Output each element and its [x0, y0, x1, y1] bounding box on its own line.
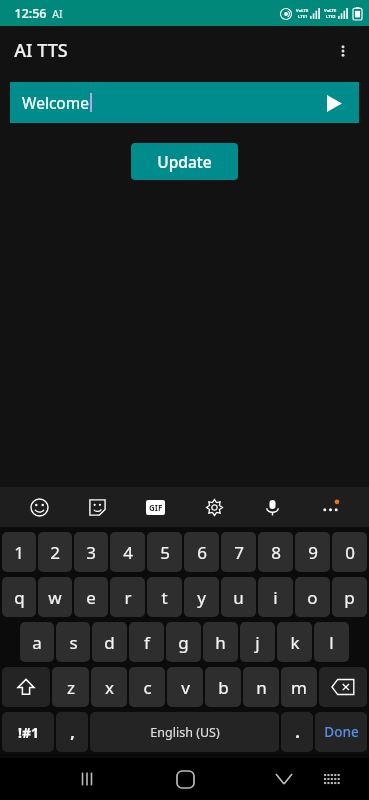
staticText: Done: [324, 723, 359, 741]
staticText: 8: [271, 541, 281, 564]
button[interactable]: 7: [221, 532, 256, 572]
staticText: 1: [14, 541, 24, 564]
staticText: c: [143, 676, 152, 699]
button[interactable]: 8: [258, 532, 293, 572]
button[interactable]: w: [38, 577, 72, 617]
staticText: f: [144, 631, 150, 654]
staticText: 7: [234, 541, 244, 564]
staticText: LTE1: [298, 14, 308, 20]
button[interactable]: Home: [164, 758, 206, 800]
button[interactable]: Comma: [56, 712, 88, 752]
staticText: g: [178, 631, 189, 654]
button[interactable]: More options: [323, 31, 363, 71]
staticText: 2: [50, 541, 60, 564]
button[interactable]: Voice input: [255, 490, 289, 524]
staticText: VoLTE: [324, 8, 337, 14]
button[interactable]: g: [166, 622, 201, 662]
button[interactable]: Switch keyboard: [311, 758, 353, 800]
button[interactable]: 3: [74, 532, 108, 572]
button[interactable]: o: [295, 577, 330, 617]
button[interactable]: z: [52, 667, 89, 707]
button[interactable]: v: [167, 667, 203, 707]
staticText: s: [69, 631, 78, 654]
button[interactable]: Stickers: [80, 490, 114, 524]
button[interactable]: GIF: [138, 490, 172, 524]
staticText: LTE2: [326, 14, 336, 20]
staticText: w: [48, 586, 62, 609]
button[interactable]: Done: [315, 712, 367, 752]
staticText: x: [105, 676, 114, 699]
staticText: VoLTE: [296, 8, 309, 14]
button[interactable]: r: [110, 577, 145, 617]
button[interactable]: m: [281, 667, 317, 707]
button[interactable]: Welcome: [10, 82, 359, 123]
button[interactable]: j: [240, 622, 275, 662]
staticText: u: [233, 586, 244, 609]
button[interactable]: y: [184, 577, 219, 617]
staticText: 0: [345, 541, 355, 564]
staticText: n: [256, 676, 267, 699]
staticText: b: [218, 676, 229, 699]
staticText: t: [161, 586, 168, 609]
button[interactable]: Shift: [2, 667, 50, 707]
staticText: z: [67, 676, 75, 699]
staticText: k: [290, 631, 300, 654]
button[interactable]: c: [129, 667, 165, 707]
button[interactable]: Period: [281, 712, 313, 752]
button[interactable]: 2: [38, 532, 72, 572]
button[interactable]: Emoji: [22, 490, 56, 524]
button[interactable]: Play: [317, 86, 351, 120]
staticText: GIF: [149, 502, 163, 513]
button[interactable]: Update: [131, 143, 238, 180]
button[interactable]: 4: [110, 532, 145, 572]
staticText: 6: [197, 541, 207, 564]
button[interactable]: d: [92, 622, 127, 662]
button[interactable]: 1: [2, 532, 36, 572]
staticText: ,: [70, 721, 75, 743]
button[interactable]: u: [221, 577, 256, 617]
button[interactable]: f: [129, 622, 164, 662]
staticText: o: [307, 586, 318, 609]
staticText: 3: [86, 541, 96, 564]
button[interactable]: 6: [184, 532, 219, 572]
button[interactable]: e: [74, 577, 108, 617]
staticText: Update: [157, 151, 212, 172]
button[interactable]: 9: [295, 532, 330, 572]
button[interactable]: x: [91, 667, 127, 707]
staticText: Welcome: [22, 92, 89, 113]
staticText: AI: [52, 7, 63, 21]
button[interactable]: l: [314, 622, 349, 662]
staticText: 9: [308, 541, 318, 564]
button[interactable]: b: [205, 667, 241, 707]
button[interactable]: h: [203, 622, 238, 662]
button[interactable]: i: [258, 577, 293, 617]
staticText: p: [344, 586, 355, 609]
button[interactable]: k: [277, 622, 312, 662]
staticText: j: [255, 631, 260, 654]
staticText: h: [215, 631, 226, 654]
staticText: 5: [160, 541, 170, 564]
staticText: m: [291, 676, 307, 699]
staticText: d: [104, 631, 115, 654]
button[interactable]: a: [20, 622, 54, 662]
button[interactable]: Recents: [66, 758, 108, 800]
button[interactable]: 0: [332, 532, 367, 572]
button[interactable]: q: [2, 577, 36, 617]
button[interactable]: More: [313, 490, 347, 524]
button[interactable]: s: [56, 622, 90, 662]
button[interactable]: 5: [147, 532, 182, 572]
button[interactable]: t: [147, 577, 182, 617]
button[interactable]: Backspace: [319, 667, 367, 707]
staticText: y: [197, 586, 206, 609]
staticText: q: [14, 586, 25, 609]
staticText: 4: [123, 541, 133, 564]
staticText: English (US): [150, 724, 220, 741]
staticText: !#1: [18, 723, 39, 742]
staticText: 12:56: [14, 5, 47, 22]
button[interactable]: Symbols: [2, 712, 54, 752]
button[interactable]: p: [332, 577, 367, 617]
button[interactable]: English (US): [90, 712, 279, 752]
button[interactable]: n: [243, 667, 279, 707]
button[interactable]: Settings: [197, 490, 231, 524]
button[interactable]: Hide keyboard: [263, 758, 305, 800]
